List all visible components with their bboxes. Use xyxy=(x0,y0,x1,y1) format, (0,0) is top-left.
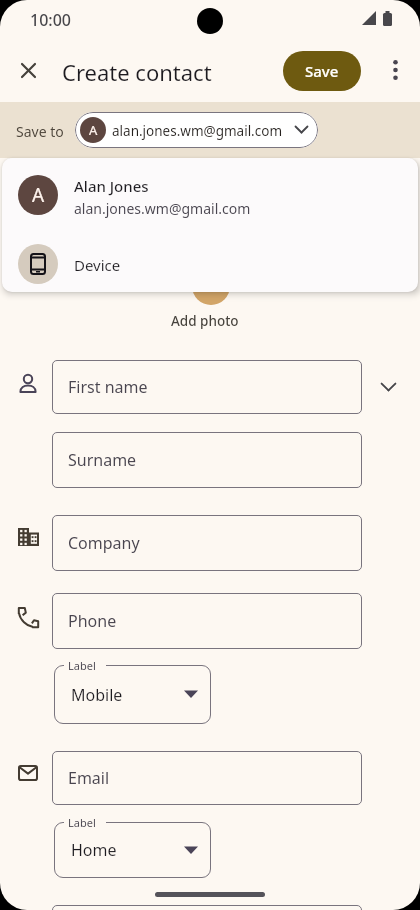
staticText: Label xyxy=(68,658,96,673)
button[interactable]: Surname xyxy=(52,432,362,488)
button[interactable] xyxy=(10,52,47,89)
staticText: 10:00 xyxy=(30,9,71,31)
button[interactable]: Company xyxy=(52,515,362,571)
button[interactable]: Email xyxy=(52,751,362,805)
staticText: Device xyxy=(74,255,121,275)
staticText: Label xyxy=(68,815,96,830)
staticText: Company xyxy=(68,532,140,554)
button[interactable]: First name xyxy=(52,360,362,414)
staticText: Save xyxy=(305,61,339,81)
staticText: Save to xyxy=(16,122,64,141)
staticText: alan.jones.wm@gmail.com xyxy=(74,199,251,218)
button[interactable]: A xyxy=(75,112,318,148)
button[interactable]: Phone xyxy=(52,593,362,649)
button[interactable]: Mobile xyxy=(54,665,211,724)
staticText: First name xyxy=(68,376,148,398)
button[interactable]: Home xyxy=(54,822,211,878)
staticText: alan.jones.wm@gmail.com xyxy=(112,122,283,140)
staticText: A xyxy=(89,121,98,139)
staticText: Phone xyxy=(68,610,117,632)
staticText: Add photo xyxy=(171,312,239,330)
button[interactable] xyxy=(377,52,413,88)
staticText: Surname xyxy=(68,449,137,471)
staticText: Email xyxy=(68,767,110,789)
button[interactable]: A xyxy=(2,161,418,230)
staticText: A xyxy=(32,182,45,208)
staticText: Create contact xyxy=(62,57,212,87)
button[interactable]: Device xyxy=(2,230,418,292)
staticText: Alan Jones xyxy=(74,176,149,196)
button[interactable]: Save xyxy=(283,51,361,91)
staticText: Mobile xyxy=(71,684,123,706)
staticText: Home xyxy=(71,839,117,861)
